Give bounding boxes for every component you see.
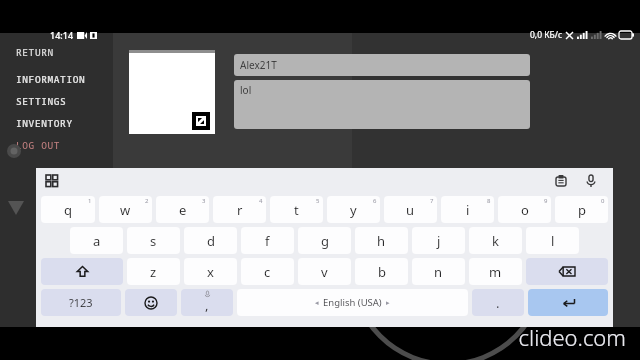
- button[interactable]: k: [469, 227, 522, 254]
- staticText: RETURN: [16, 46, 54, 59]
- staticText: 2: [145, 197, 149, 205]
- button[interactable]: d: [184, 227, 237, 254]
- staticText: g: [321, 232, 329, 250]
- button[interactable]: u: [384, 196, 437, 223]
- staticText: 14:14: [50, 29, 74, 41]
- staticText: l: [551, 232, 555, 250]
- staticText: u: [406, 201, 415, 219]
- button[interactable]: a: [70, 227, 123, 254]
- button[interactable]: p: [555, 196, 608, 223]
- button[interactable]: Keyboard menu: [46, 175, 59, 188]
- staticText: y: [350, 201, 357, 219]
- staticText: INFORMATION: [16, 73, 86, 86]
- button[interactable]: v: [298, 258, 351, 285]
- button[interactable]: lol: [234, 80, 530, 129]
- staticText: English (USA): [323, 296, 382, 309]
- button[interactable]: Shift: [41, 258, 123, 285]
- staticText: 0,0 КБ/с: [530, 29, 563, 41]
- staticText: a: [93, 232, 101, 250]
- staticText: h: [377, 232, 386, 250]
- button[interactable]: s: [127, 227, 180, 254]
- staticText: r: [237, 201, 243, 219]
- button[interactable]: RETURN: [16, 46, 54, 59]
- staticText: ◂: [315, 299, 319, 307]
- staticText: j: [437, 232, 441, 250]
- staticText: x: [207, 263, 214, 281]
- staticText: v: [321, 263, 328, 281]
- button[interactable]: o: [498, 196, 551, 223]
- button[interactable]: .: [472, 289, 524, 316]
- staticText: 5: [316, 197, 320, 205]
- button[interactable]: Enter: [528, 289, 608, 316]
- staticText: d: [207, 232, 215, 250]
- staticText: s: [150, 232, 157, 250]
- button[interactable]: g: [298, 227, 351, 254]
- staticText: SETTINGS: [16, 95, 67, 108]
- staticText: clideo.com: [518, 322, 626, 352]
- staticText: 9: [544, 197, 548, 205]
- staticText: w: [120, 201, 131, 219]
- staticText: f: [265, 232, 270, 250]
- button[interactable]: x: [184, 258, 237, 285]
- staticText: e: [179, 201, 187, 219]
- button[interactable]: INVENTORY: [16, 117, 73, 130]
- staticText: INVENTORY: [16, 117, 73, 130]
- button[interactable]: ◂: [237, 289, 468, 316]
- staticText: 4: [259, 197, 263, 205]
- staticText: c: [264, 263, 271, 281]
- button[interactable]: Clipboard: [553, 173, 569, 189]
- button[interactable]: z: [127, 258, 180, 285]
- button[interactable]: j: [412, 227, 465, 254]
- button[interactable]: q: [41, 196, 95, 223]
- button[interactable]: Voice input: [583, 173, 599, 189]
- button[interactable]: c: [241, 258, 294, 285]
- staticText: 0: [601, 197, 605, 205]
- staticText: lol: [240, 83, 252, 97]
- staticText: .: [496, 294, 500, 312]
- button[interactable]: w: [99, 196, 152, 223]
- staticText: ?123: [69, 295, 93, 310]
- staticText: ▸: [386, 299, 390, 307]
- button[interactable]: t: [270, 196, 323, 223]
- staticText: 7: [430, 197, 434, 205]
- button[interactable]: i: [441, 196, 494, 223]
- staticText: o: [521, 201, 529, 219]
- button[interactable]: h: [355, 227, 408, 254]
- staticText: b: [378, 263, 386, 281]
- staticText: m: [489, 263, 502, 281]
- button[interactable]: ?123: [41, 289, 121, 316]
- staticText: k: [492, 232, 499, 250]
- button[interactable]: f: [241, 227, 294, 254]
- button[interactable]: ,: [181, 289, 233, 316]
- staticText: 8: [487, 197, 491, 205]
- button[interactable]: l: [526, 227, 579, 254]
- staticText: ,: [205, 296, 209, 314]
- staticText: 3: [202, 197, 206, 205]
- button[interactable]: INFORMATION: [16, 73, 86, 86]
- staticText: n: [434, 263, 443, 281]
- button[interactable]: b: [355, 258, 408, 285]
- button[interactable]: m: [469, 258, 522, 285]
- button[interactable]: Backspace: [526, 258, 608, 285]
- button[interactable]: Edit avatar: [192, 112, 210, 130]
- button[interactable]: e: [156, 196, 209, 223]
- button[interactable]: r: [213, 196, 266, 223]
- button[interactable]: LOG OUT: [16, 139, 61, 152]
- staticText: p: [578, 201, 586, 219]
- staticText: LOG OUT: [16, 139, 61, 152]
- staticText: i: [466, 201, 470, 219]
- staticText: q: [64, 201, 72, 219]
- staticText: Alex21T: [240, 58, 277, 72]
- button[interactable]: Emoji: [125, 289, 177, 316]
- staticText: z: [150, 263, 157, 281]
- button[interactable]: y: [327, 196, 380, 223]
- staticText: 1: [88, 197, 92, 205]
- button[interactable]: n: [412, 258, 465, 285]
- button[interactable]: Alex21T: [234, 54, 530, 76]
- staticText: 6: [373, 197, 377, 205]
- staticText: t: [294, 201, 299, 219]
- button[interactable]: SETTINGS: [16, 95, 67, 108]
